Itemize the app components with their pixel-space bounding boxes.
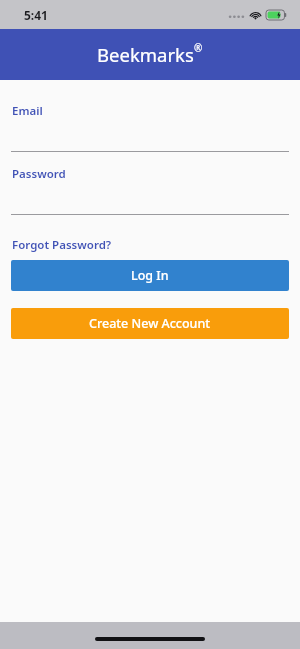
button[interactable]: Password bbox=[0, 166, 300, 215]
button[interactable]: Email bbox=[0, 103, 300, 152]
button[interactable]: Create New Account bbox=[11, 308, 289, 339]
staticText: Create New Account bbox=[89, 315, 211, 332]
staticText: Forgot Password? bbox=[12, 237, 112, 253]
staticText: Email bbox=[12, 103, 43, 119]
staticText: Log In bbox=[131, 267, 169, 284]
staticText: 5:41 bbox=[24, 7, 48, 23]
staticText: Beekmarks bbox=[97, 42, 194, 67]
button[interactable]: Log In bbox=[11, 260, 289, 291]
staticText: Password bbox=[12, 166, 66, 182]
button[interactable]: Forgot Password? bbox=[11, 235, 113, 255]
staticText: ® bbox=[194, 41, 203, 55]
